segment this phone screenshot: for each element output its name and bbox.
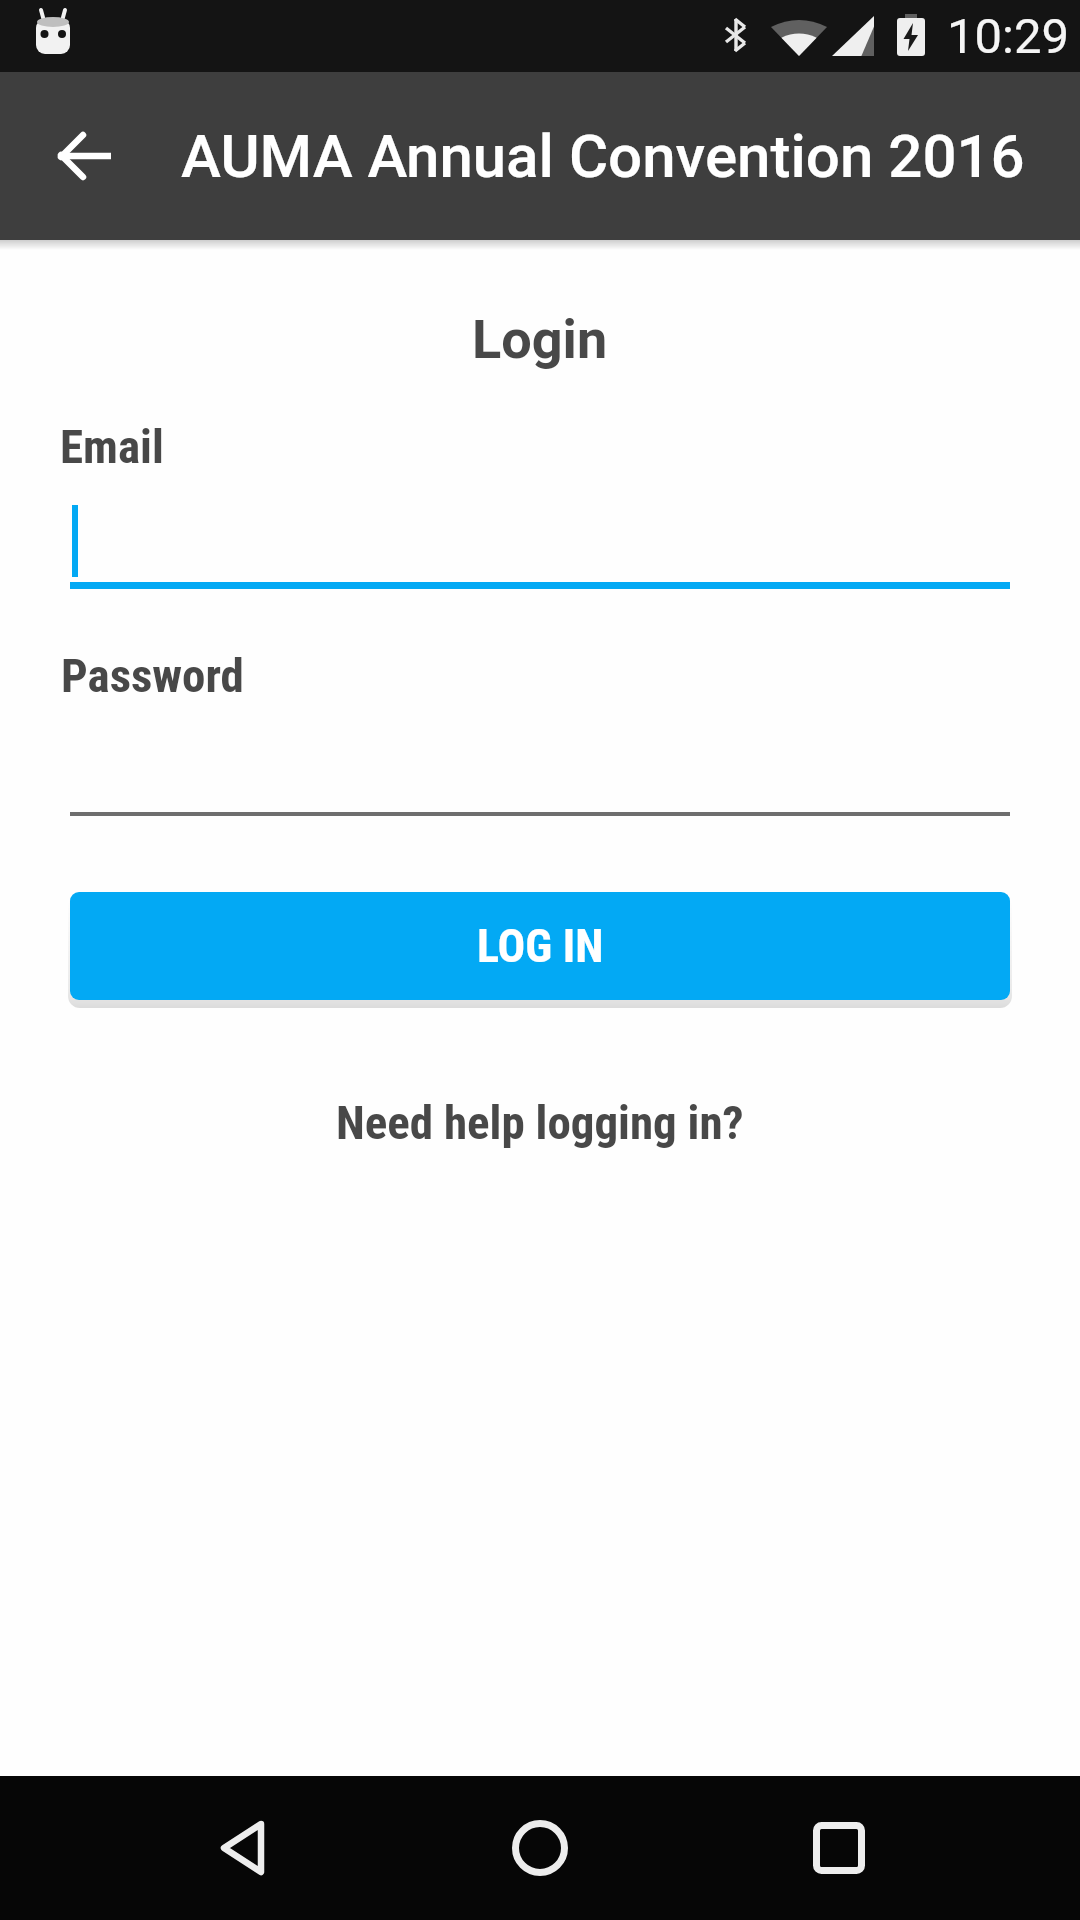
button[interactable] bbox=[0, 72, 172, 240]
button[interactable] bbox=[794, 1803, 884, 1893]
staticText: Password bbox=[61, 648, 244, 703]
staticText: LOG IN bbox=[477, 919, 604, 973]
staticText: Login bbox=[472, 308, 608, 371]
staticText: AUMA Annual Convention 2016 bbox=[181, 121, 1025, 191]
staticText: Email bbox=[60, 419, 164, 474]
button[interactable] bbox=[70, 502, 1010, 589]
button[interactable] bbox=[495, 1803, 585, 1893]
button[interactable]: LOG IN bbox=[70, 892, 1010, 1000]
button[interactable]: Need help logging in? bbox=[336, 1095, 744, 1150]
button[interactable] bbox=[70, 736, 1010, 816]
staticText: 10:29 bbox=[947, 8, 1070, 65]
button[interactable] bbox=[197, 1803, 287, 1893]
